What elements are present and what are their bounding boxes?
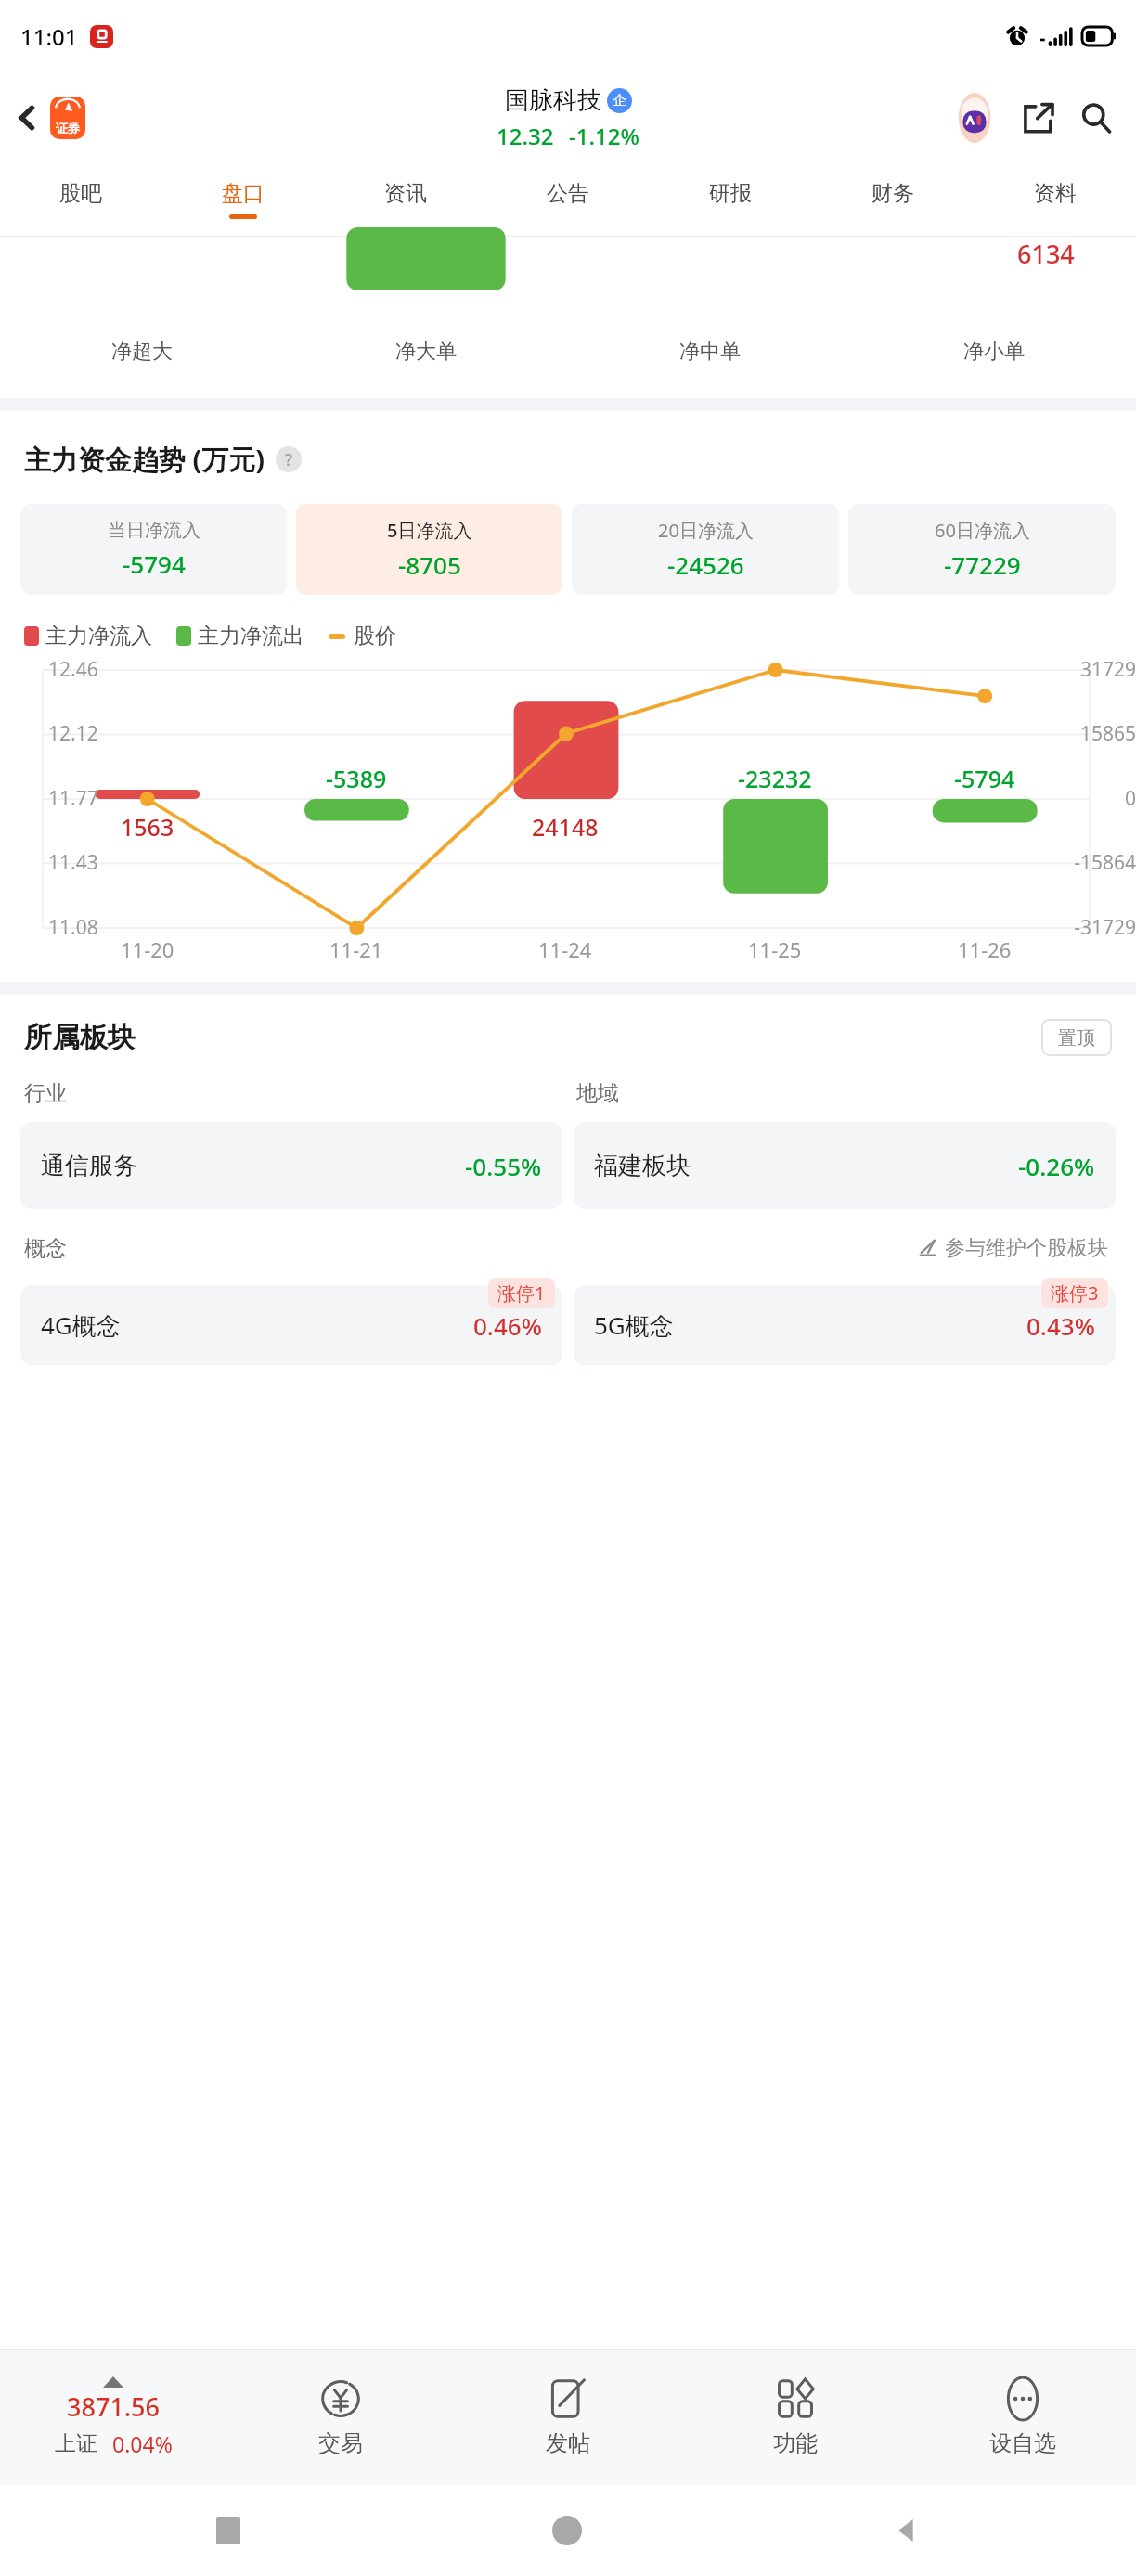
button[interactable]: 公告	[486, 163, 649, 236]
staticText: 涨停1	[497, 1281, 546, 1306]
staticText: -24526	[667, 548, 744, 581]
button[interactable]: 交易	[226, 2350, 454, 2485]
staticText: 主力净流入	[45, 623, 152, 650]
staticText: 1563	[121, 811, 174, 843]
button[interactable]: 4G概念	[20, 1285, 562, 1365]
staticText: 12.46	[48, 656, 98, 683]
staticText: 15865	[1028, 720, 1136, 747]
staticText: 所属板块	[24, 1020, 136, 1055]
button[interactable]: 发帖	[454, 2350, 681, 2485]
button[interactable]: 福建板块	[574, 1122, 1116, 1209]
button[interactable]: 3871.56	[0, 2350, 226, 2485]
staticText: 地域	[576, 1080, 619, 1107]
staticText: -0.55%	[465, 1150, 542, 1182]
staticText: 主力净流出	[198, 623, 304, 650]
button[interactable]: 盘口	[161, 163, 324, 236]
staticText: 0.43%	[1026, 1309, 1095, 1342]
button[interactable]: Back	[9, 93, 91, 143]
staticText: 福建板块	[594, 1151, 691, 1181]
button[interactable]: 当日净流入	[20, 504, 287, 595]
staticText: 净中单	[679, 339, 741, 365]
button[interactable]: 研报	[649, 163, 811, 236]
staticText: 3871.56	[67, 2389, 161, 2424]
staticText: 资讯	[384, 180, 427, 207]
staticText: -31729	[1028, 914, 1136, 941]
button[interactable]: Home	[552, 2516, 582, 2545]
staticText: 公告	[547, 180, 589, 207]
staticText: 4G概念	[41, 1308, 121, 1342]
staticText: 涨停3	[1051, 1281, 1099, 1306]
button[interactable]: Back	[893, 2517, 921, 2544]
button[interactable]: Share	[1015, 95, 1062, 141]
button[interactable]: Search	[1073, 95, 1119, 141]
button[interactable]: 资料	[974, 163, 1136, 236]
button[interactable]: 股吧	[0, 163, 161, 236]
button[interactable]: Help	[276, 446, 302, 472]
staticText: 5日净流入	[387, 518, 472, 543]
staticText: 发帖	[546, 2429, 590, 2457]
staticText: 12.12	[48, 720, 98, 747]
staticText: 财务	[871, 180, 914, 207]
staticText: 企	[613, 92, 626, 109]
button[interactable]: AI assistant	[952, 93, 997, 143]
staticText: 交易	[318, 2429, 363, 2457]
staticText: 资料	[1034, 180, 1077, 207]
staticText: 11:01	[20, 21, 78, 52]
staticText: 参与维护个股板块	[945, 1235, 1108, 1261]
staticText: 股吧	[59, 180, 102, 207]
staticText: 通信服务	[41, 1151, 137, 1181]
staticText: 行业	[24, 1080, 67, 1107]
staticText: -8705	[398, 548, 461, 581]
staticText: 6134	[1017, 237, 1075, 271]
staticText: -1.12%	[569, 121, 639, 151]
staticText: 12.32	[497, 121, 554, 151]
staticText: 研报	[709, 180, 752, 207]
staticText: 11-21	[329, 935, 383, 963]
button[interactable]: 5日净流入	[296, 504, 562, 595]
button[interactable]: 设自选	[909, 2350, 1136, 2485]
staticText: 5G概念	[594, 1308, 674, 1342]
staticText: 置顶	[1058, 1026, 1095, 1050]
staticText: 功能	[773, 2429, 818, 2457]
staticText: -5794	[954, 763, 1015, 794]
button[interactable]: 参与维护个股板块	[913, 1231, 1112, 1265]
staticText: 证券	[56, 121, 80, 135]
staticText: 净超大	[111, 339, 173, 365]
staticText: -15864	[1028, 849, 1136, 876]
staticText: 11-20	[121, 935, 174, 963]
staticText: ?	[285, 448, 293, 471]
staticText: -23232	[738, 763, 812, 794]
staticText: -77229	[944, 548, 1021, 581]
staticText: 11-26	[958, 935, 1012, 963]
staticText: 上证	[55, 2430, 97, 2457]
button[interactable]: 60日净流入	[848, 504, 1116, 595]
button[interactable]: 功能	[681, 2350, 909, 2485]
staticText: 11.77	[48, 785, 98, 812]
staticText: 24148	[532, 811, 599, 843]
staticText: 主力资金趋势 (万元)	[24, 441, 265, 478]
staticText: 11-25	[748, 935, 802, 963]
button[interactable]: 5G概念	[574, 1285, 1116, 1365]
button[interactable]: 资讯	[324, 163, 486, 236]
staticText: 11.08	[48, 914, 98, 941]
button[interactable]: 财务	[811, 163, 974, 236]
staticText: -0.26%	[1018, 1150, 1095, 1182]
button[interactable]: Recents	[216, 2517, 240, 2544]
staticText: 设自选	[989, 2429, 1056, 2457]
button[interactable]: 20日净流入	[572, 504, 839, 595]
staticText: 11.43	[48, 849, 98, 876]
staticText: 0	[1028, 785, 1136, 812]
staticText: -5389	[326, 763, 387, 794]
staticText: 股价	[354, 623, 396, 650]
staticText: 0.04%	[112, 2429, 173, 2458]
staticText: 概念	[24, 1235, 67, 1262]
button[interactable]: 置顶	[1041, 1019, 1112, 1056]
staticText: 31729	[1028, 656, 1136, 683]
button[interactable]: 通信服务	[20, 1122, 562, 1209]
staticText: -5794	[123, 547, 186, 580]
staticText: 净小单	[963, 339, 1025, 365]
staticText: 60日净流入	[935, 518, 1030, 543]
staticText: 国脉科技	[505, 85, 601, 116]
staticText: 0.46%	[473, 1309, 542, 1342]
staticText: 20日净流入	[658, 518, 754, 543]
